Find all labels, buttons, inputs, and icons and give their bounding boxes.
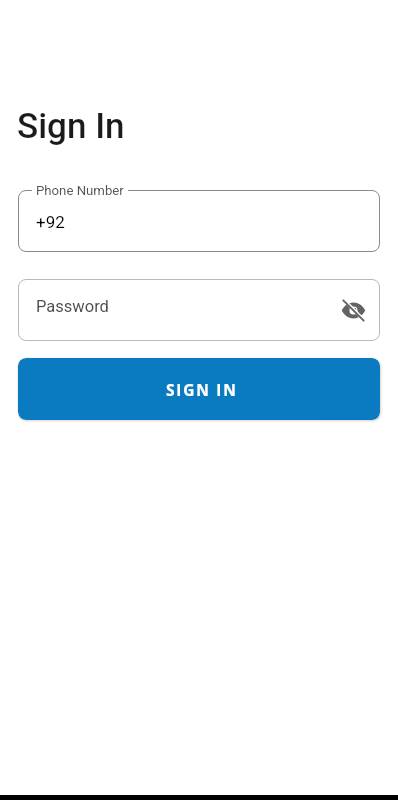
button[interactable]: SIGN IN (18, 358, 380, 420)
staticText: SIGN IN (166, 379, 238, 400)
staticText: Sign In (17, 106, 125, 147)
button[interactable]: +92 (18, 190, 380, 252)
staticText: Phone Number (36, 183, 124, 198)
button[interactable]: Password (18, 279, 380, 341)
staticText: +92 (36, 212, 65, 232)
button[interactable]: Show password (331, 288, 375, 332)
staticText: Password (36, 297, 109, 316)
